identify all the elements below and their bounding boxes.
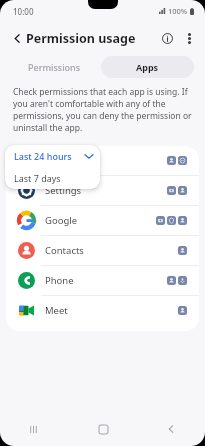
staticText: Permissions [28, 61, 81, 73]
staticText: Phone [45, 274, 167, 287]
button[interactable]: Information [156, 27, 178, 49]
button[interactable]: Last 24 hours [5, 145, 100, 167]
staticText: Contacts [45, 244, 178, 257]
staticText: Permission usage [26, 30, 136, 47]
staticText: Last 7 days [14, 172, 61, 184]
staticText: Meet [45, 304, 178, 317]
staticText: Check permissions that each app is using… [13, 86, 192, 134]
button[interactable]: Camera [6, 146, 199, 175]
button[interactable]: More options [178, 27, 200, 49]
button[interactable]: Phone [6, 265, 199, 295]
staticText: 100% [168, 6, 188, 16]
button[interactable]: Meet [6, 295, 199, 325]
staticText: Last 24 hours [14, 150, 85, 162]
staticText: Google [45, 214, 156, 227]
staticText: 10:00 [13, 6, 34, 17]
button[interactable]: Back [6, 27, 28, 49]
button[interactable]: Last 7 days [5, 167, 100, 189]
button[interactable]: Permissions [8, 56, 101, 78]
button[interactable]: Recents [0, 412, 69, 446]
button[interactable]: Contacts [6, 235, 199, 265]
button[interactable]: Settings [6, 175, 199, 205]
staticText: Camera [45, 154, 167, 167]
button[interactable]: Back [137, 412, 205, 446]
button[interactable]: Google [6, 205, 199, 235]
staticText: Apps [136, 61, 159, 73]
button[interactable]: Home [69, 412, 137, 446]
staticText: Settings [45, 184, 167, 197]
button[interactable]: Apps [101, 56, 194, 78]
